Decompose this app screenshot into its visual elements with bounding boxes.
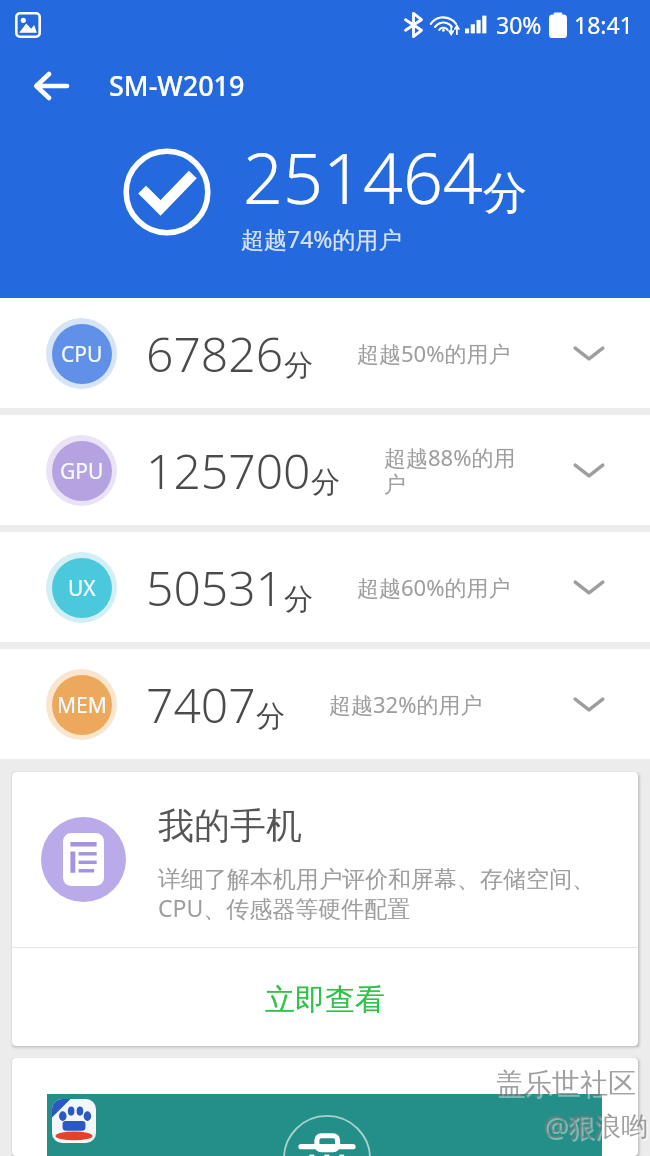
button[interactable]: Expand xyxy=(527,649,650,759)
button[interactable]: CPU xyxy=(0,298,650,408)
button[interactable]: Back xyxy=(15,50,87,122)
staticText: 超越32%的用户 xyxy=(329,689,483,719)
staticText: 立即查看 xyxy=(265,981,385,1019)
staticText: 盖乐世社区 xyxy=(498,1068,638,1103)
button[interactable]: Expand xyxy=(527,298,650,408)
button[interactable]: Expand xyxy=(527,532,650,642)
staticText: 251464 xyxy=(243,129,483,224)
staticText: 分 xyxy=(284,581,313,618)
staticText: MEM xyxy=(57,691,107,720)
staticText: SM-W2019 xyxy=(109,67,245,104)
button[interactable]: 立即查看 xyxy=(12,948,638,1046)
button[interactable]: 我的手机 xyxy=(12,772,638,947)
staticText: 18:41 xyxy=(574,9,633,40)
staticText: GPU xyxy=(60,457,104,486)
staticText: 超越60%的用户 xyxy=(357,572,511,602)
staticText: 详细了解本机用户评价和屏幕、存储空间、 CPU、传感器等硬件配置 xyxy=(158,865,595,924)
button[interactable]: Expand xyxy=(527,415,650,525)
staticText: 分 xyxy=(284,347,313,384)
staticText: UX xyxy=(68,574,96,603)
staticText: 67826 xyxy=(146,321,284,386)
staticText: CPU xyxy=(61,340,103,369)
staticText: 超越74%的用户 xyxy=(241,223,402,254)
staticText: 7407 xyxy=(146,672,256,737)
button[interactable]: UX xyxy=(0,532,650,642)
staticText: 盖乐世社区 xyxy=(496,1066,636,1101)
staticText: 超越88%的用户 xyxy=(384,442,527,499)
button[interactable] xyxy=(12,1058,638,1156)
staticText: 超越50%的用户 xyxy=(357,338,511,368)
staticText: 分 xyxy=(311,464,340,501)
staticText: 30% xyxy=(496,9,542,40)
staticText: 50531 xyxy=(146,555,284,620)
staticText: 分 xyxy=(256,698,285,735)
staticText: 我的手机 xyxy=(158,803,302,848)
staticText: 125700 xyxy=(146,438,311,503)
button[interactable]: GPU xyxy=(0,415,650,525)
staticText: @狠浪哟 xyxy=(543,1107,649,1144)
staticText: @狠浪哟 xyxy=(545,1109,650,1146)
button[interactable]: MEM xyxy=(0,649,650,759)
staticText: 分 xyxy=(483,166,527,221)
